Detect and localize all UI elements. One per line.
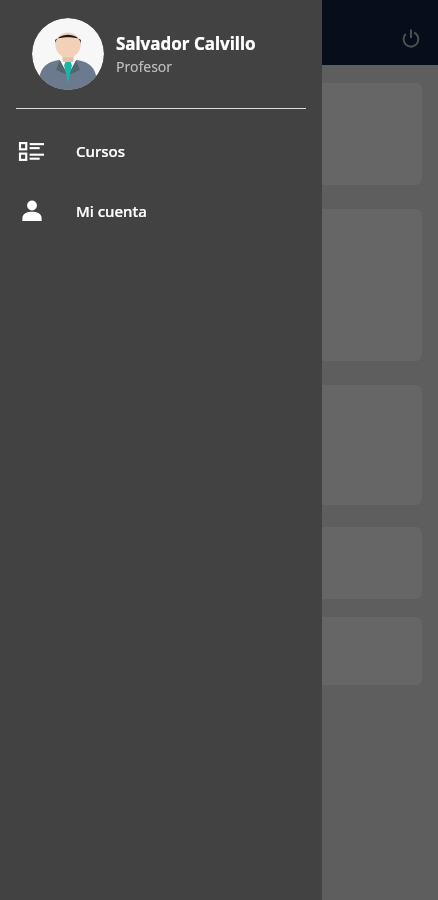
button[interactable]: Cerrar sesión (389, 16, 433, 60)
button[interactable]: Tu curso se ha ... (16, 527, 422, 599)
staticText: Mi cuenta (76, 201, 147, 221)
button[interactable]: Agregar curso (16, 385, 422, 505)
button[interactable]: Mi cuenta (0, 181, 322, 241)
button[interactable]: Sept. (16, 83, 422, 185)
staticText: Grupo A · 10:00 (98, 138, 185, 154)
staticText: Sept. (41, 104, 76, 123)
staticText: Profesor (116, 57, 173, 76)
button[interactable]: Salvador Calvillo (0, 0, 322, 108)
button[interactable]: Abrir menú (8, 16, 52, 60)
staticText: Cursos (76, 141, 126, 161)
button[interactable]: ¿Necesitas más? Cambia tu plan. (16, 209, 422, 361)
button[interactable]: Más información ... (16, 617, 422, 685)
button[interactable]: Cursos (0, 121, 322, 181)
staticText: Salvador Calvillo (116, 32, 256, 55)
